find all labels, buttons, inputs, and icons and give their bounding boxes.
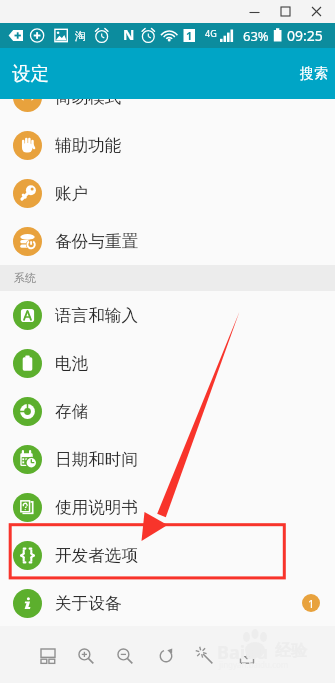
button[interactable]: 存储 bbox=[0, 387, 335, 435]
staticText: 开发者选项 bbox=[55, 545, 138, 566]
staticText: 1 bbox=[186, 28, 193, 43]
button[interactable]: Download bbox=[233, 642, 261, 670]
staticText: 系统 bbox=[14, 271, 36, 285]
staticText: 存储 bbox=[55, 401, 89, 422]
staticText: 语言和输入 bbox=[55, 305, 138, 326]
button[interactable]: 开发者选项 bbox=[0, 531, 335, 579]
staticText: 账户 bbox=[55, 183, 89, 204]
staticText: 09:25 bbox=[287, 26, 323, 45]
button[interactable]: 搜索 bbox=[288, 56, 335, 92]
button[interactable]: Rotate bbox=[152, 642, 180, 670]
staticText: 日期和时间 bbox=[55, 449, 138, 470]
button[interactable]: 关于设备 bbox=[0, 579, 335, 626]
staticText: 使用说明书 bbox=[55, 497, 138, 518]
staticText: 电池 bbox=[55, 353, 89, 374]
staticText: Baidu bbox=[217, 640, 269, 665]
button[interactable]: 使用说明书 bbox=[0, 483, 335, 531]
button[interactable]: 备份与重置 bbox=[0, 217, 335, 265]
staticText: 淘 bbox=[75, 29, 86, 43]
button[interactable]: 账户 bbox=[0, 169, 335, 217]
staticText: 1 bbox=[308, 596, 315, 611]
button[interactable]: 辅助功能 bbox=[0, 121, 335, 169]
staticText: N bbox=[123, 25, 135, 44]
button[interactable]: Close bbox=[301, 0, 332, 23]
button[interactable]: 语言和输入 bbox=[0, 291, 335, 339]
button[interactable]: Zoom in bbox=[72, 642, 100, 670]
staticText: 经验 bbox=[275, 641, 307, 661]
staticText: 63% bbox=[243, 27, 269, 45]
staticText: 简易模式 bbox=[55, 99, 122, 108]
button[interactable]: Minimize bbox=[239, 0, 270, 23]
staticText: 搜索 bbox=[300, 65, 328, 83]
button[interactable]: 简易模式 bbox=[0, 99, 335, 121]
staticText: 设定 bbox=[12, 62, 49, 85]
staticText: 辅助功能 bbox=[55, 135, 122, 156]
button[interactable]: 日期和时间 bbox=[0, 435, 335, 483]
button[interactable]: 设定 bbox=[0, 54, 62, 93]
button[interactable]: Zoom out bbox=[111, 642, 139, 670]
staticText: 4G bbox=[205, 27, 217, 39]
button[interactable]: Enhance bbox=[191, 642, 219, 670]
button[interactable]: Fit to screen bbox=[34, 642, 62, 670]
staticText: 关于设备 bbox=[55, 593, 122, 614]
button[interactable]: 电池 bbox=[0, 339, 335, 387]
button[interactable]: Maximize bbox=[270, 0, 301, 23]
staticText: 备份与重置 bbox=[55, 231, 138, 252]
staticText: jingyan.baidu.com bbox=[219, 659, 289, 670]
